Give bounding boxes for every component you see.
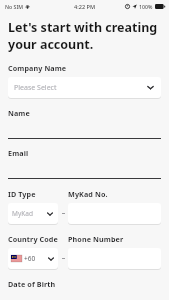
staticText: MyKad [12, 209, 46, 218]
staticText: Country Code [8, 234, 62, 244]
staticText: Email [8, 148, 29, 158]
staticText: No SIM [5, 3, 23, 10]
staticText: Please Select [14, 83, 146, 93]
button[interactable]: MyKad [8, 203, 58, 224]
button[interactable] [8, 118, 161, 139]
staticText: Phone Number [68, 234, 124, 244]
staticText: Date of Birth [8, 279, 56, 289]
staticText: 4:22 PM [74, 3, 96, 11]
other: Malaysia [11, 255, 22, 262]
button[interactable]: Malaysia [8, 248, 58, 269]
staticText: MyKad No. [68, 189, 108, 199]
staticText: ID Type [8, 189, 62, 199]
button[interactable]: Please Select [8, 77, 161, 98]
staticText: Company Name [8, 63, 67, 73]
other: Select country code [47, 255, 55, 263]
staticText: +60 [24, 254, 45, 263]
staticText: Let's start with creating your account. [8, 19, 158, 52]
staticText: 100% [139, 3, 153, 10]
other: Select ID type [46, 210, 54, 218]
button[interactable] [8, 158, 161, 179]
staticText: Name [8, 108, 30, 118]
other: Open company list [146, 83, 155, 92]
